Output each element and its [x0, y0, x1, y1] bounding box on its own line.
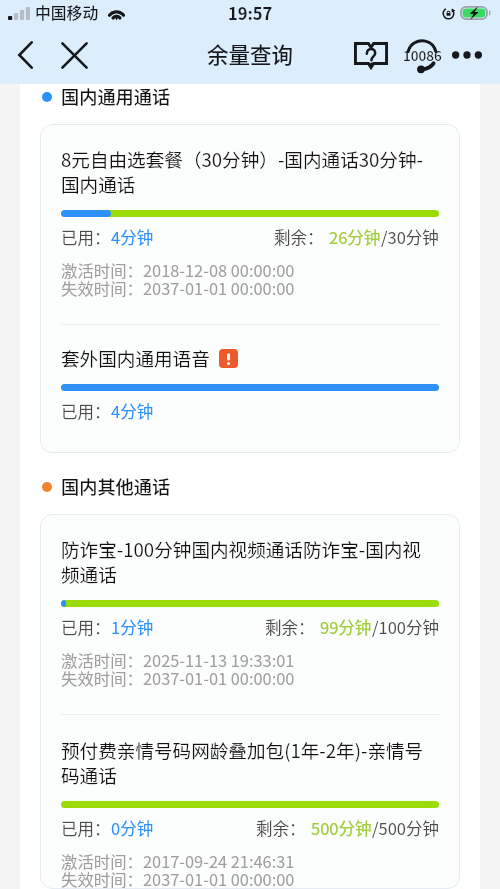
staticText: 剩余：: [256, 818, 306, 839]
staticText: 余量查询: [207, 41, 294, 69]
staticText: 激活时间：2025-11-13 19:33:01: [61, 653, 295, 671]
staticText: 10086: [403, 47, 442, 65]
staticText: 国内其他通话: [61, 475, 171, 499]
staticText: 99分钟: [320, 617, 372, 638]
staticText: /30分钟: [381, 227, 439, 248]
button[interactable]: 帮助: [349, 32, 393, 78]
staticText: 已用：: [61, 617, 111, 638]
staticText: 激活时间：2018-12-08 00:00:00: [61, 263, 295, 281]
staticText: 4分钟: [111, 401, 154, 422]
staticText: 19:57: [228, 3, 273, 24]
button[interactable]: 关闭: [57, 33, 91, 77]
staticText: 26分钟: [329, 227, 381, 248]
staticText: 0分钟: [111, 818, 154, 839]
staticText: 中国移动: [35, 3, 99, 24]
staticText: 已用：: [61, 227, 111, 248]
button[interactable]: 更多: [445, 32, 489, 78]
button[interactable]: 8元自由选套餐（30分钟）-国内通话30分钟-国内通话: [40, 124, 460, 324]
staticText: 已用：: [61, 401, 111, 422]
staticText: /500分钟: [372, 818, 439, 839]
staticText: 防诈宝-100分钟国内视频通话防诈宝-国内视频通话: [61, 537, 439, 587]
button[interactable]: 返回: [8, 33, 42, 77]
staticText: 500分钟: [311, 818, 372, 839]
staticText: 激活时间：2017-09-24 21:46:31: [61, 854, 295, 872]
staticText: 套外国内通用语音: [61, 346, 210, 371]
button[interactable]: 套外国内通用语音: [40, 325, 460, 453]
staticText: 剩余：: [265, 617, 315, 638]
staticText: 已用：: [61, 818, 111, 839]
button[interactable]: 预付费亲情号码网龄叠加包(1年-2年)-亲情号码通话: [40, 715, 460, 889]
button[interactable]: 10086客服: [399, 32, 445, 78]
staticText: 剩余：: [274, 227, 324, 248]
button[interactable]: 防诈宝-100分钟国内视频通话防诈宝-国内视频通话: [40, 514, 460, 714]
staticText: 失效时间：2037-01-01 00:00:00: [61, 281, 295, 299]
staticText: 8元自由选套餐（30分钟）-国内通话30分钟-国内通话: [61, 147, 439, 197]
staticText: 4分钟: [111, 227, 154, 248]
staticText: 失效时间：2037-01-01 00:00:00: [61, 671, 295, 689]
staticText: 失效时间：2037-01-01 00:00:00: [61, 872, 295, 889]
staticText: 国内通用通话: [61, 85, 171, 109]
staticText: /100分钟: [372, 617, 439, 638]
staticText: 1分钟: [111, 617, 154, 638]
staticText: 预付费亲情号码网龄叠加包(1年-2年)-亲情号码通话: [61, 738, 439, 788]
